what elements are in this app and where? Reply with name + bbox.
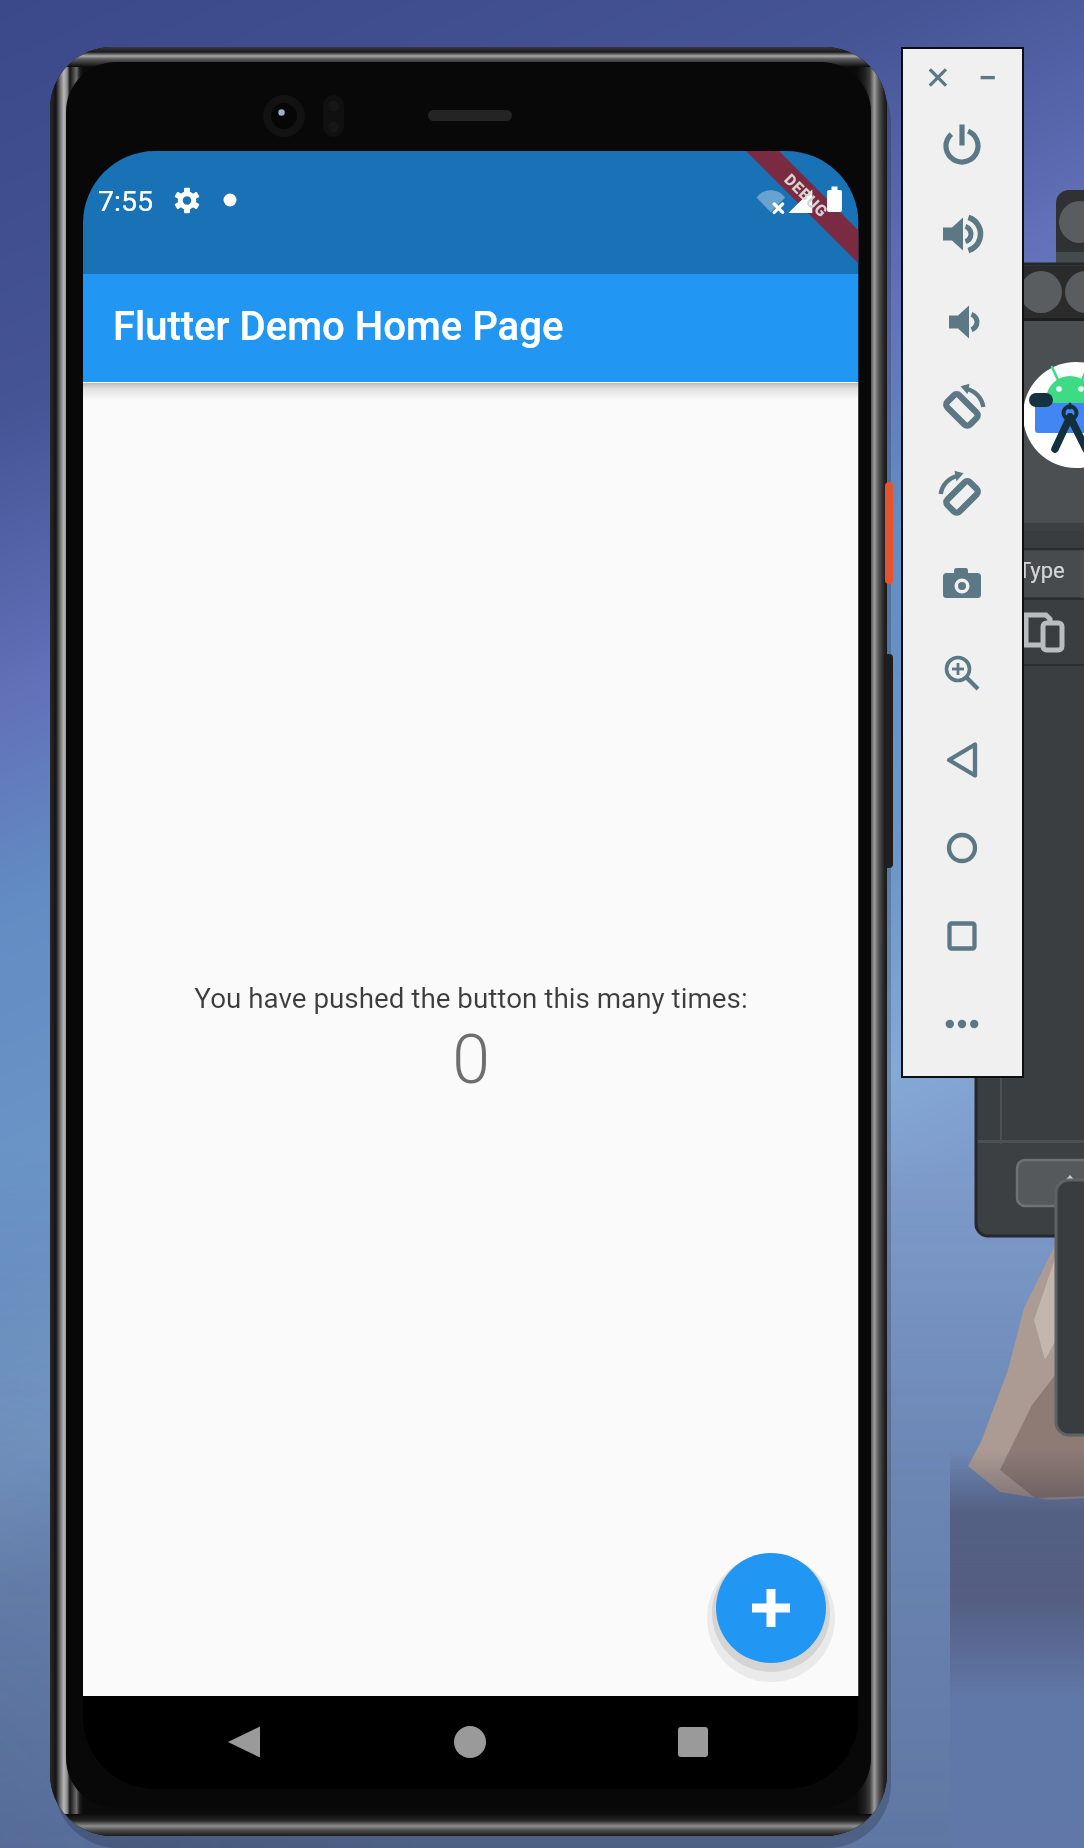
button[interactable]: Increment [716, 1553, 826, 1663]
button[interactable]: Volume up [931, 203, 993, 265]
button[interactable]: More [931, 993, 993, 1055]
button[interactable]: Zoom in [931, 642, 993, 704]
button[interactable]: Back [185, 1700, 303, 1782]
staticText: Type [1018, 558, 1065, 584]
button[interactable]: Overview [931, 905, 993, 967]
button[interactable]: Rotate left [931, 379, 993, 441]
button[interactable]: Power [931, 115, 993, 177]
button[interactable]: Minimize [968, 57, 1008, 98]
button[interactable]: Rotate right [931, 466, 993, 528]
staticText: Flutter Demo Home Page [113, 303, 564, 350]
staticText: 0 [452, 1020, 490, 1096]
staticText: 7:55 [98, 185, 153, 218]
button[interactable]: Home [412, 1700, 530, 1782]
staticText: DEBUG [780, 170, 831, 221]
button[interactable]: Back [931, 729, 993, 791]
button[interactable]: Take screenshot [931, 554, 993, 616]
button[interactable]: Flutter Demo Home Page [83, 274, 858, 382]
button[interactable]: Home [931, 817, 993, 879]
staticText: You have pushed the button this many tim… [194, 982, 748, 1015]
button[interactable]: Volume down [931, 291, 993, 353]
button[interactable]: Recent apps [635, 1700, 753, 1782]
button[interactable]: Close [918, 57, 958, 98]
